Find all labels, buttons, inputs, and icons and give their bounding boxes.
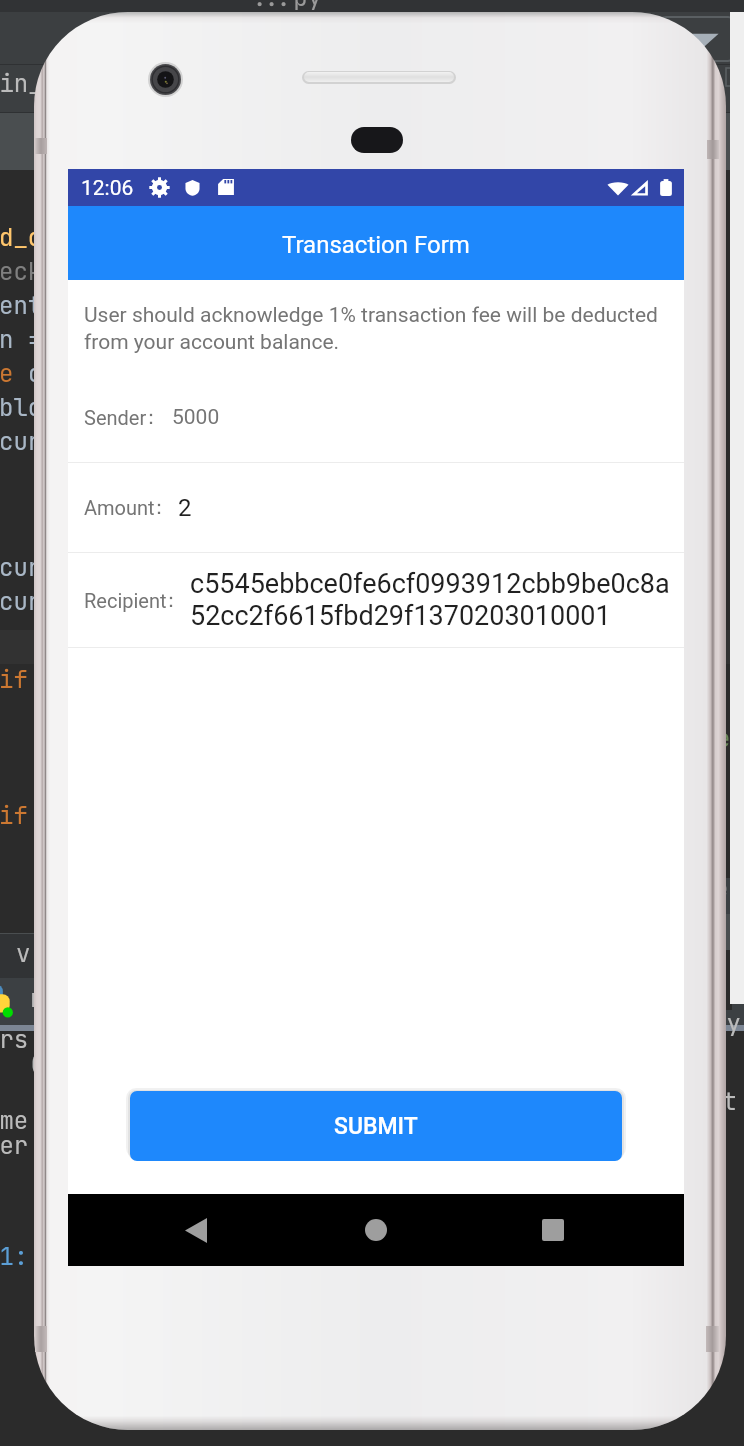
staticText: c5545ebbce0fe6cf0993912cbb9be0c8a 52cc2f… bbox=[190, 568, 670, 632]
staticText: ain_ bbox=[0, 68, 43, 100]
staticText: cur bbox=[0, 552, 43, 584]
staticText: ： bbox=[141, 405, 161, 430]
staticText: e bbox=[0, 358, 14, 390]
button[interactable]: Recipient bbox=[84, 553, 682, 647]
staticText: Sender bbox=[84, 406, 147, 429]
staticText: cur bbox=[0, 586, 43, 618]
staticText: ver bbox=[0, 1130, 29, 1162]
staticText: Transaction Form bbox=[282, 231, 470, 259]
staticText: if bbox=[0, 664, 28, 696]
staticText: if bbox=[0, 800, 28, 832]
staticText: cur bbox=[0, 426, 43, 458]
staticText: e bbox=[716, 723, 731, 755]
staticText: ers bbox=[0, 1024, 29, 1056]
button[interactable]: SUBMIT bbox=[130, 1091, 622, 1161]
button[interactable]: Sender bbox=[84, 372, 684, 462]
button[interactable]: Home bbox=[316, 1194, 436, 1266]
staticText: eck bbox=[0, 256, 43, 288]
staticText: Recipient bbox=[84, 589, 167, 612]
staticText: 12:06 bbox=[81, 176, 134, 201]
button[interactable]: Recent apps bbox=[493, 1194, 613, 1266]
staticText: ent bbox=[0, 290, 43, 322]
staticText: v bbox=[16, 938, 31, 970]
staticText: " ( bbox=[0, 1049, 43, 1081]
staticText: ome bbox=[0, 1105, 29, 1137]
staticText: .1: bbox=[0, 1241, 29, 1273]
staticText: n = bbox=[0, 324, 43, 356]
staticText: nt bbox=[708, 1086, 737, 1118]
staticText: d_c bbox=[0, 222, 43, 254]
staticText: blo bbox=[0, 392, 43, 424]
staticText: 5000 bbox=[172, 405, 220, 430]
staticText: n bbox=[30, 983, 45, 1015]
staticText: ： bbox=[161, 588, 181, 613]
staticText: c bbox=[28, 358, 43, 390]
button[interactable]: Amount bbox=[84, 463, 684, 552]
staticText: py bbox=[712, 1008, 741, 1040]
staticText: 2 bbox=[178, 494, 192, 522]
staticText: ...py bbox=[250, 0, 322, 14]
staticText: SUBMIT bbox=[334, 1113, 418, 1140]
staticText: e bbox=[714, 873, 729, 905]
button[interactable]: Back bbox=[136, 1194, 256, 1266]
staticText: ： bbox=[149, 495, 169, 520]
staticText: Amount bbox=[84, 496, 155, 519]
staticText: User should acknowledge 1% transaction f… bbox=[84, 303, 674, 354]
